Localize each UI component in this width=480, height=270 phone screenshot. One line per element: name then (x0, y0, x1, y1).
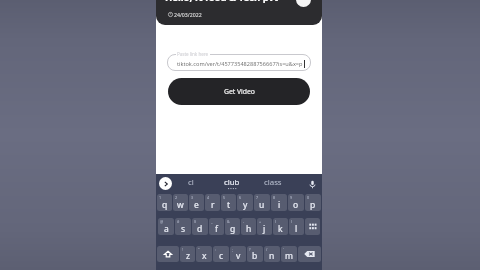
staticText: tiktok.com/ver/t/45773548288756667?is=u&… (177, 60, 303, 68)
staticText: ' (283, 247, 284, 252)
staticText: 24/03/2022 (174, 11, 202, 18)
button[interactable]: 9 (288, 194, 304, 211)
staticText: r (211, 199, 215, 211)
button[interactable]: ( (273, 218, 288, 235)
button[interactable]: @ (158, 218, 174, 235)
staticText: ! (182, 247, 183, 252)
staticText: g (230, 223, 236, 235)
staticText: _ (211, 219, 213, 224)
button[interactable]: Symbols keypad (305, 218, 320, 235)
staticText: s (181, 223, 186, 235)
staticText: 1 (159, 195, 162, 200)
staticText: Paste link here (177, 51, 209, 57)
staticText: 9 (290, 195, 293, 200)
staticText: 7 (256, 195, 259, 200)
button[interactable]: - (241, 218, 256, 235)
staticText: q (162, 199, 168, 211)
staticText: 3 (191, 195, 194, 200)
staticText: ) (291, 219, 293, 224)
staticText: @ (160, 219, 164, 224)
button[interactable]: 2 (173, 194, 188, 211)
staticText: class (264, 177, 282, 188)
staticText: + (259, 219, 262, 224)
staticText: / (266, 247, 268, 252)
staticText: 6 (239, 195, 242, 200)
staticText: v (236, 250, 241, 262)
staticText: y (243, 199, 248, 211)
staticText: : (215, 247, 216, 252)
button[interactable]: # (175, 218, 191, 235)
button[interactable]: Expand suggestions (159, 177, 172, 190)
staticText: m (285, 250, 293, 262)
button[interactable]: ; (230, 246, 246, 262)
button[interactable]: Voice input (307, 179, 317, 189)
staticText: t (227, 199, 231, 211)
staticText: # (177, 219, 180, 224)
button[interactable]: 4 (205, 194, 220, 211)
button[interactable]: 3 (189, 194, 204, 211)
staticText: cl (188, 177, 194, 188)
staticText: c (219, 250, 224, 262)
staticText: k (278, 223, 283, 235)
staticText: ? (249, 247, 251, 252)
staticText: a (164, 223, 169, 235)
staticText: o (293, 199, 299, 211)
staticText: - (243, 219, 245, 224)
button[interactable]: 0 (305, 194, 321, 211)
staticText: f (215, 223, 218, 235)
button[interactable]: 6 (237, 194, 253, 211)
staticText: d (197, 223, 203, 235)
button[interactable]: $ (192, 218, 208, 235)
staticText: $ (194, 219, 197, 224)
staticText: 4 (207, 195, 210, 200)
button[interactable]: & (225, 218, 240, 235)
button[interactable]: 8 (271, 194, 287, 211)
staticText: i (278, 199, 281, 211)
button[interactable]: / (264, 246, 280, 262)
staticText: 2 (175, 195, 178, 200)
staticText: u (259, 199, 265, 211)
staticText: l (295, 223, 298, 235)
button[interactable]: ' (281, 246, 297, 262)
button[interactable]: Backspace (298, 246, 321, 262)
button[interactable]: 7 (254, 194, 270, 211)
button[interactable]: ) (289, 218, 304, 235)
staticText: b (252, 250, 258, 262)
button[interactable]: : (213, 246, 229, 262)
button[interactable]: 5 (221, 194, 236, 211)
button[interactable]: 1 (157, 194, 172, 211)
button[interactable]: ! (180, 246, 195, 262)
staticText: x (202, 250, 207, 262)
button[interactable]: Profile (296, 0, 311, 7)
staticText: & (227, 219, 230, 224)
staticText: j (263, 223, 266, 235)
staticText: h (246, 223, 252, 235)
button[interactable]: Get Video (168, 78, 310, 105)
staticText: " (198, 247, 200, 252)
staticText: z (186, 250, 190, 262)
button[interactable]: ? (247, 246, 263, 262)
staticText: w (177, 199, 184, 211)
button[interactable]: + (257, 218, 272, 235)
staticText: Get Video (224, 87, 255, 96)
staticText: 5 (223, 195, 226, 200)
button[interactable]: " (196, 246, 212, 262)
staticText: ( (275, 219, 277, 224)
staticText: 0 (307, 195, 310, 200)
staticText: club (224, 177, 240, 188)
staticText: e (194, 199, 199, 211)
staticText: 8 (273, 195, 276, 200)
staticText: n (269, 250, 275, 262)
button[interactable]: _ (209, 218, 224, 235)
button[interactable]: Shift (157, 246, 179, 262)
staticText: ; (232, 247, 233, 252)
staticText: Hello, ft food & Tech pvt (165, 0, 279, 4)
staticText: p (310, 199, 316, 211)
